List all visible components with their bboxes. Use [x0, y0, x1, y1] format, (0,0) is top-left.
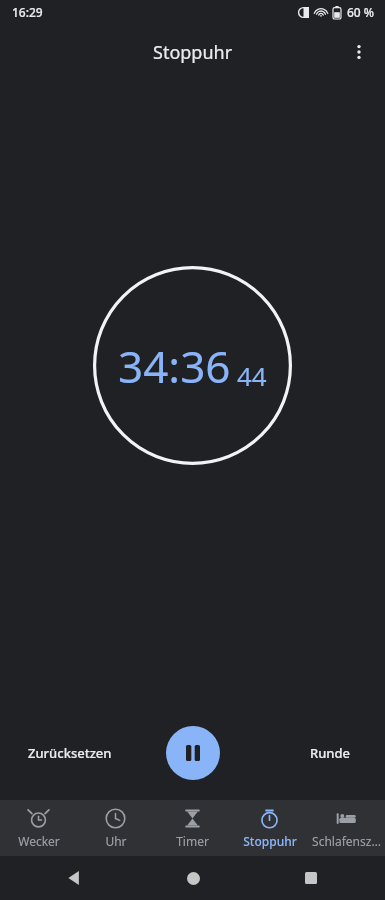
staticText: Zurücksetzen — [28, 744, 112, 762]
staticText: 60 % — [347, 4, 375, 20]
staticText: 34:36 — [118, 336, 231, 396]
staticText: Stoppuhr — [243, 833, 297, 849]
staticText: Uhr — [105, 833, 127, 849]
button[interactable]: Home — [177, 862, 209, 894]
staticText: Timer — [176, 833, 209, 849]
button[interactable]: More options — [337, 30, 381, 74]
button[interactable]: Pause — [166, 726, 220, 780]
button[interactable]: Stoppuhr — [231, 800, 308, 856]
button[interactable]: Back — [58, 862, 90, 894]
button[interactable]: Zurücksetzen — [14, 734, 126, 772]
staticText: 16:29 — [12, 4, 43, 20]
button[interactable]: Uhr — [77, 800, 154, 856]
button[interactable]: Wecker — [0, 800, 77, 856]
button[interactable]: Recent apps — [295, 862, 327, 894]
button[interactable]: Timer — [154, 800, 231, 856]
button[interactable]: Runde — [296, 734, 365, 772]
staticText: Wecker — [18, 833, 60, 849]
staticText: 44 — [237, 358, 267, 393]
staticText: Runde — [310, 744, 351, 762]
button[interactable]: Schlafensz… — [308, 800, 385, 856]
staticText: Schlafensz… — [312, 833, 381, 849]
staticText: Stoppuhr — [153, 40, 233, 65]
